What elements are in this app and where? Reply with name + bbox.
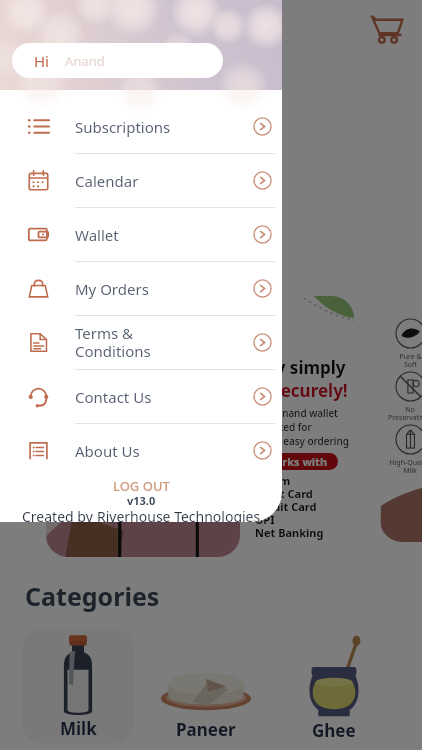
staticText: No Preservatives bbox=[388, 405, 422, 422]
staticText: Subscriptions bbox=[75, 117, 253, 137]
staticText: v13.0 bbox=[127, 493, 156, 507]
button[interactable]: Terms & Conditions bbox=[0, 316, 282, 370]
button[interactable]: Ghee bbox=[279, 629, 389, 743]
staticText: & securely! bbox=[255, 379, 348, 402]
button[interactable]: Cart bbox=[371, 12, 403, 44]
button[interactable]: Hi bbox=[12, 43, 223, 78]
staticText: Ghee bbox=[312, 719, 356, 742]
button[interactable]: Pure & Soft bbox=[380, 310, 422, 542]
staticText: Categories bbox=[25, 579, 160, 613]
staticText: Pure & Soft bbox=[399, 352, 422, 369]
button[interactable]: Refer a friend today and get bbox=[16, 140, 407, 222]
button[interactable]: Calendar bbox=[0, 154, 282, 208]
button[interactable]: Milk bbox=[23, 629, 133, 743]
staticText: Refer a friend today and get bbox=[34, 157, 272, 180]
button[interactable] bbox=[16, 82, 400, 124]
staticText: Rs 100 off! bbox=[34, 183, 116, 205]
button[interactable]: Pay simply bbox=[248, 296, 354, 556]
staticText: My Orders bbox=[75, 279, 253, 299]
staticText: LOG OUT bbox=[113, 477, 170, 493]
button[interactable]: Paneer bbox=[151, 629, 261, 743]
button[interactable]: Subscriptions bbox=[0, 100, 282, 154]
button[interactable]: LOG OUT bbox=[0, 477, 282, 493]
staticText: Paytm Debit Card Credit Card UPI Net Ban… bbox=[255, 473, 324, 540]
staticText: Pay simply bbox=[255, 356, 346, 379]
staticText: High-Quality Milk bbox=[389, 458, 422, 475]
staticText: Milk bbox=[60, 717, 97, 740]
staticText: Contact Us bbox=[75, 387, 253, 407]
staticText: Created by bbox=[22, 507, 97, 522]
staticText: Wallet bbox=[75, 225, 253, 245]
staticText: Terms & Conditions bbox=[75, 323, 253, 362]
button[interactable]: My Orders bbox=[0, 262, 282, 316]
staticText: Hi bbox=[34, 51, 49, 71]
button[interactable] bbox=[46, 296, 240, 557]
staticText: About Us bbox=[75, 441, 253, 461]
button[interactable]: Wallet bbox=[0, 208, 282, 262]
button[interactable]: Riverhouse Technologies bbox=[97, 507, 261, 522]
staticText: Works with bbox=[265, 454, 328, 469]
staticText: Calendar bbox=[75, 171, 253, 191]
staticText: Anand bbox=[65, 52, 105, 70]
staticText: Use Anand wallet updated for quick easy … bbox=[255, 406, 349, 448]
button[interactable]: About Us bbox=[0, 424, 282, 477]
staticText: Paneer bbox=[176, 718, 236, 741]
button[interactable]: Contact Us bbox=[0, 370, 282, 424]
